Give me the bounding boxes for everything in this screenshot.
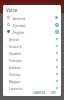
button[interactable]: Android [3,14,61,21]
button[interactable]: Download voice [52,28,61,35]
staticText: Latviešu [9,86,22,90]
button[interactable]: Italiano [3,63,61,70]
button[interactable]: Download voice [52,70,61,77]
button[interactable]: Download voice [52,35,61,42]
button[interactable]: Magyar [3,77,61,84]
button[interactable]: Download voice [52,56,61,63]
button[interactable]: OK [48,89,61,95]
staticText: Čeština [9,72,21,76]
button[interactable]: Download voice [52,42,61,49]
staticText: Русский [13,23,26,27]
button[interactable]: Download voice [52,21,61,28]
button[interactable]: CANCEL [31,89,48,95]
button[interactable]: Deutsch [3,42,61,49]
button[interactable]: Français [3,56,61,63]
button[interactable]: Download voice [52,84,61,91]
button[interactable]: Play sample [52,14,61,21]
staticText: Voice [6,7,18,13]
button[interactable]: Latviešu [3,84,61,91]
staticText: Deutsch [9,44,22,48]
button[interactable]: Español [3,49,61,56]
staticText: Français [9,58,22,62]
staticText: Android [13,16,26,20]
button[interactable]: Download voice [52,49,61,56]
button[interactable]: Download voice [52,63,61,70]
button[interactable]: Download voice [52,77,61,84]
staticText: Español [9,51,22,55]
staticText: Magyar [9,79,21,83]
staticText: British [9,37,20,41]
staticText: English [13,30,25,34]
button[interactable]: English [3,28,61,35]
staticText: Italiano [9,65,21,69]
staticText: OK [51,90,56,94]
button[interactable]: Русский [3,21,61,28]
button[interactable]: Čeština [3,70,61,77]
button[interactable]: British [3,35,61,42]
staticText: CANCEL [33,90,46,94]
